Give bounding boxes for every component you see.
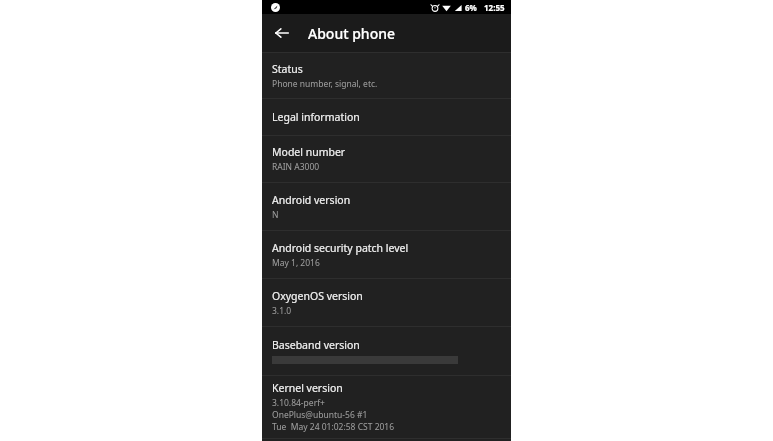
staticText: About phone bbox=[308, 24, 396, 43]
staticText: N bbox=[272, 209, 279, 221]
button[interactable]: Kernel version bbox=[262, 376, 511, 438]
staticText: Kernel version bbox=[272, 381, 343, 395]
staticText: Model number bbox=[272, 145, 346, 159]
staticText: OnePlus@ubuntu-56 #1 bbox=[272, 409, 368, 421]
staticText: Legal information bbox=[272, 110, 360, 124]
staticText: OxygenOS version bbox=[272, 289, 363, 303]
button[interactable]: Status bbox=[262, 53, 511, 98]
staticText: Baseband version bbox=[272, 338, 360, 352]
staticText: Status bbox=[272, 62, 303, 76]
button[interactable]: Back bbox=[269, 20, 295, 46]
staticText: RAIN A3000 bbox=[272, 161, 320, 173]
staticText: 3.10.84-perf+ bbox=[272, 397, 325, 409]
button[interactable]: Baseband version bbox=[262, 327, 511, 375]
button[interactable]: Legal information bbox=[262, 99, 511, 135]
button[interactable]: Android security patch level bbox=[262, 231, 511, 278]
staticText: 12:55 bbox=[484, 2, 505, 13]
button[interactable]: Android version bbox=[262, 183, 511, 230]
staticText: May 1, 2016 bbox=[272, 257, 320, 269]
button[interactable]: Model number bbox=[262, 136, 511, 182]
staticText: Phone number, signal, etc. bbox=[272, 78, 378, 90]
staticText: Android security patch level bbox=[272, 241, 409, 255]
staticText: 3.1.0 bbox=[272, 305, 292, 317]
staticText: Android version bbox=[272, 193, 351, 207]
staticText: Tue May 24 01:02:58 CST 2016 bbox=[272, 421, 395, 433]
button[interactable]: OxygenOS version bbox=[262, 279, 511, 326]
staticText: 6% bbox=[465, 2, 477, 13]
